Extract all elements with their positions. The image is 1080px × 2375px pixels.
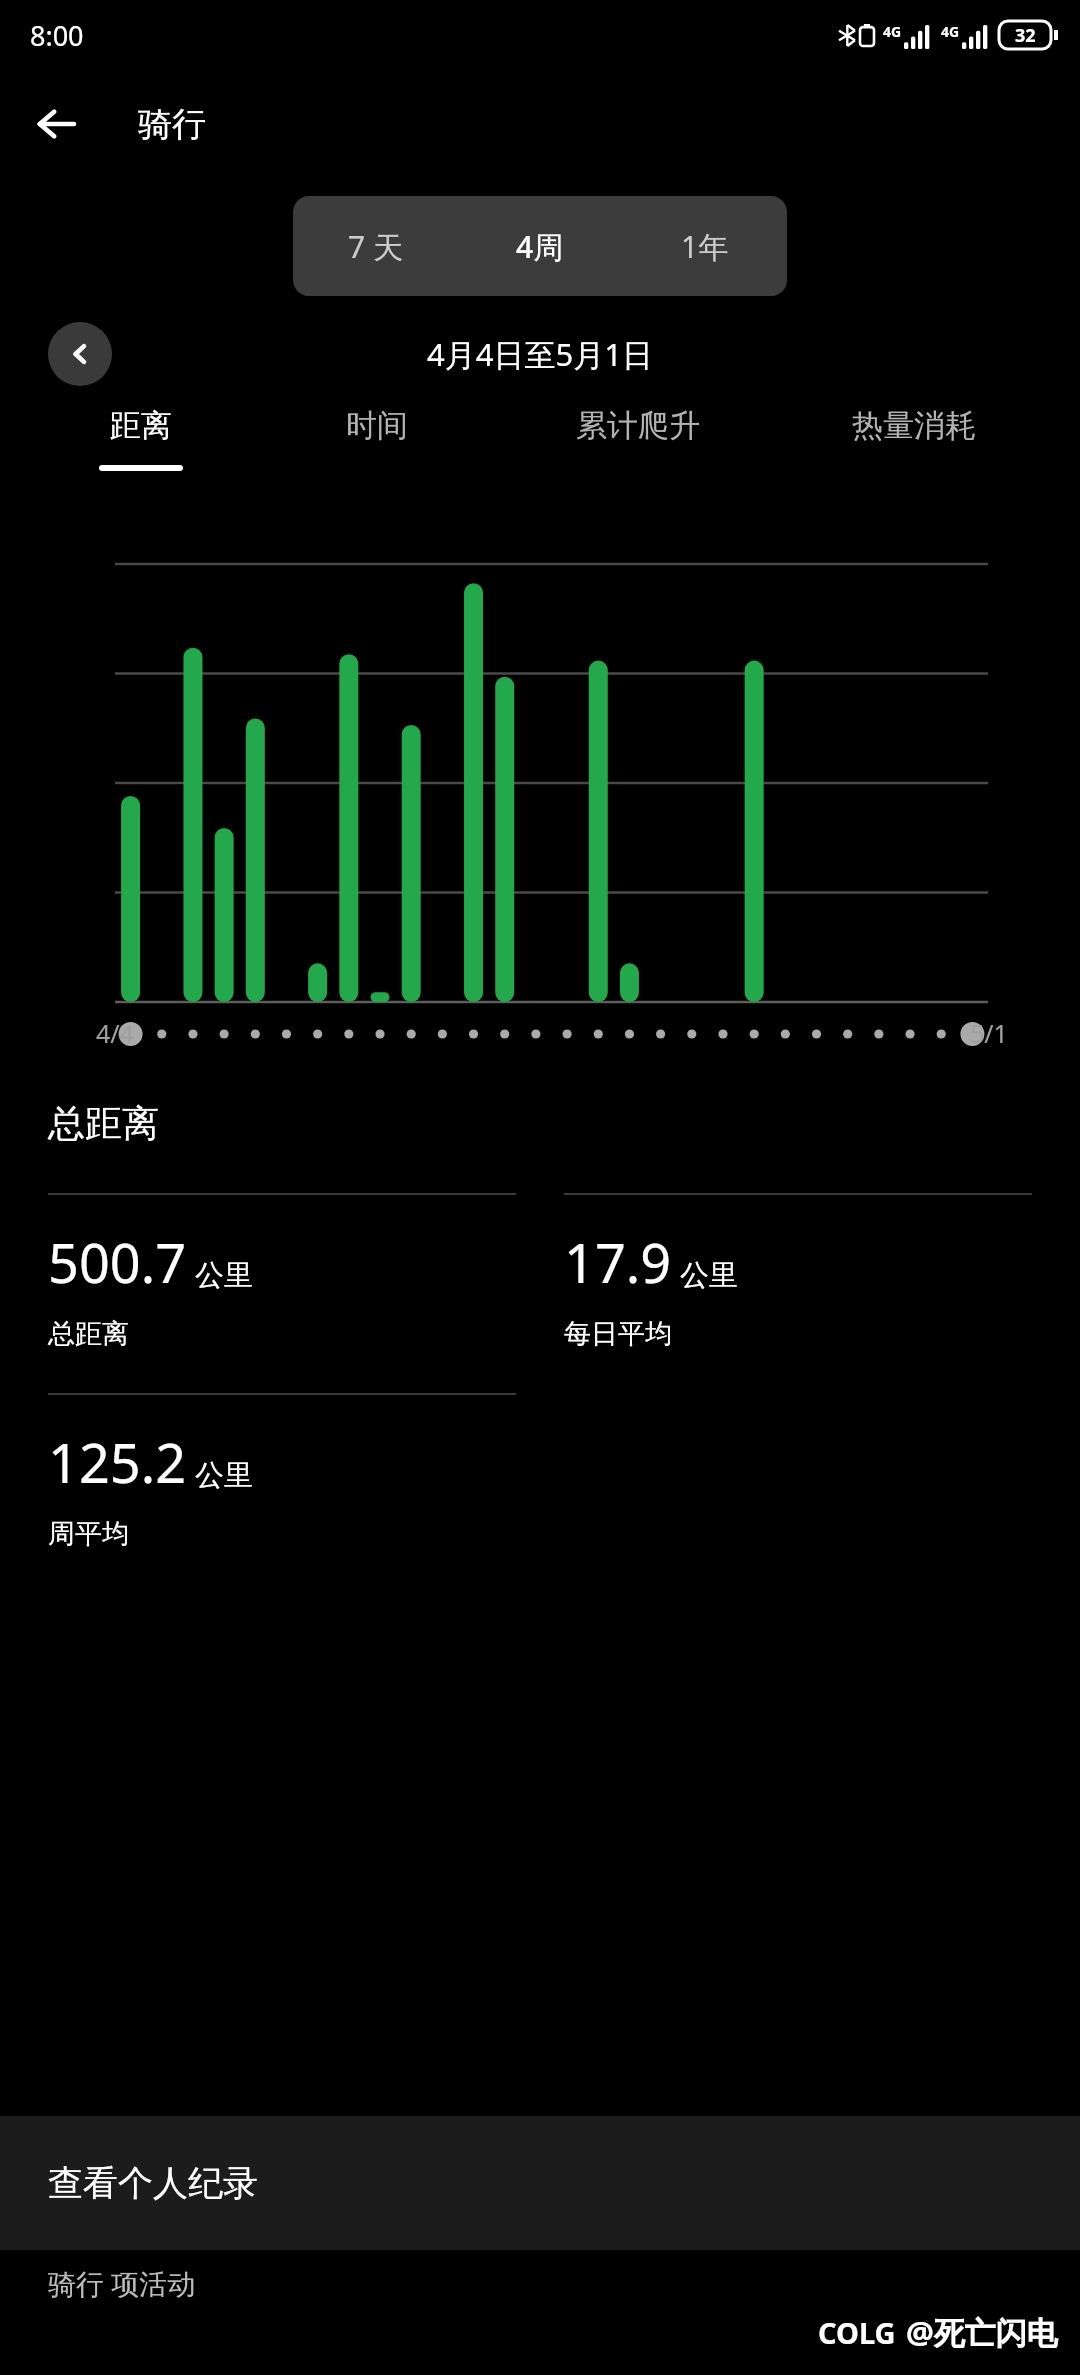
staticText: 总距离 [48,1100,159,1147]
button[interactable]: 1年 [622,196,787,296]
staticText: 125.2 [48,1425,187,1499]
staticText: 7 天 [348,226,403,267]
button[interactable]: 热量消耗 [776,406,1052,516]
staticText: 4/4 [96,1016,134,1050]
staticText: 查看个人纪录 [48,2161,258,2205]
staticText: 500.7 [48,1225,187,1299]
staticText: 5/1 [970,1016,1008,1050]
staticText: 17.9 [564,1225,672,1299]
button[interactable]: 4周 [457,196,622,296]
staticText: @死亡闪电 [906,2311,1058,2353]
staticText: 总距离 [48,1317,129,1351]
staticText: 4周 [516,226,564,267]
staticText: 距离 [110,406,172,445]
staticText: 32 [1015,23,1036,48]
staticText: COLG [818,2313,896,2352]
button[interactable]: 查看个人纪录 [0,2116,1080,2250]
staticText: 累计爬升 [576,406,700,445]
button[interactable]: 累计爬升 [500,406,776,516]
staticText: 每日平均 [564,1317,672,1351]
staticText: 公里 [195,1257,253,1294]
staticText: 4G [941,22,960,41]
button[interactable]: 7 天 [293,196,457,296]
button[interactable]: 距离 [28,406,254,516]
staticText: 骑行 项活动 [48,2264,196,2302]
staticText: 4G [883,22,902,41]
staticText: 公里 [195,1457,253,1494]
button[interactable]: Back [20,88,92,160]
staticText: 8:00 [30,17,84,54]
button[interactable]: Previous period [48,322,112,386]
staticText: 热量消耗 [852,406,976,445]
button[interactable]: 时间 [254,406,500,516]
staticText: 周平均 [48,1517,129,1551]
staticText: 1年 [681,226,729,267]
staticText: 公里 [680,1257,738,1294]
staticText: 骑行 [138,103,206,146]
staticText: 4月4日至5月1日 [427,333,653,375]
staticText: 时间 [346,406,408,445]
